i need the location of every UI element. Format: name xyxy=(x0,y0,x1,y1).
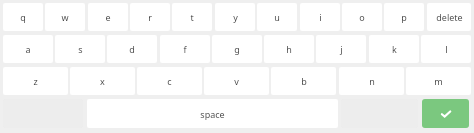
button[interactable]: o xyxy=(342,3,382,31)
button[interactable]: h xyxy=(264,35,314,63)
button[interactable]: l xyxy=(421,35,471,63)
button[interactable]: u xyxy=(257,3,297,31)
button[interactable]: e xyxy=(88,3,128,31)
staticText: f xyxy=(183,43,187,55)
button[interactable]: z xyxy=(3,67,68,95)
button[interactable]: w xyxy=(45,3,85,31)
button[interactable]: m xyxy=(406,67,471,95)
staticText: d xyxy=(129,43,135,55)
button[interactable]: g xyxy=(212,35,262,63)
button[interactable]: b xyxy=(271,67,336,95)
button[interactable]: a xyxy=(3,35,53,63)
button[interactable]: t xyxy=(172,3,212,31)
staticText: t xyxy=(190,11,194,23)
button[interactable]: r xyxy=(130,3,170,31)
button[interactable]: d xyxy=(107,35,157,63)
staticText: a xyxy=(25,43,31,55)
staticText: e xyxy=(105,11,111,23)
button[interactable]: s xyxy=(55,35,105,63)
staticText: c xyxy=(167,75,172,87)
staticText: k xyxy=(392,43,397,55)
button[interactable]: j xyxy=(316,35,366,63)
staticText: delete xyxy=(436,11,463,23)
button[interactable]: Enter xyxy=(422,99,469,128)
staticText: y xyxy=(233,11,238,23)
staticText: space xyxy=(200,108,225,120)
staticText: q xyxy=(20,11,26,23)
staticText: v xyxy=(234,75,239,87)
staticText: m xyxy=(434,75,443,87)
button[interactable]: p xyxy=(384,3,424,31)
staticText: u xyxy=(274,11,280,23)
staticText: z xyxy=(33,75,38,87)
button[interactable]: f xyxy=(160,35,210,63)
button[interactable]: k xyxy=(369,35,419,63)
button[interactable]: q xyxy=(3,3,43,31)
staticText: o xyxy=(359,11,365,23)
staticText: x xyxy=(100,75,105,87)
staticText: g xyxy=(234,43,240,55)
staticText: s xyxy=(78,43,83,55)
button[interactable]: space xyxy=(87,99,338,128)
staticText: n xyxy=(369,75,375,87)
button[interactable]: i xyxy=(300,3,340,31)
staticText: l xyxy=(445,43,448,55)
staticText: j xyxy=(340,43,343,55)
staticText: p xyxy=(401,11,407,23)
staticText: h xyxy=(286,43,292,55)
button[interactable]: delete xyxy=(427,3,471,31)
button[interactable]: n xyxy=(339,67,404,95)
staticText: r xyxy=(148,11,152,23)
staticText: i xyxy=(319,11,322,23)
staticText: b xyxy=(301,75,307,87)
button[interactable]: c xyxy=(137,67,202,95)
button[interactable]: y xyxy=(215,3,255,31)
staticText: w xyxy=(61,11,69,23)
button[interactable]: v xyxy=(204,67,269,95)
button[interactable]: x xyxy=(70,67,135,95)
